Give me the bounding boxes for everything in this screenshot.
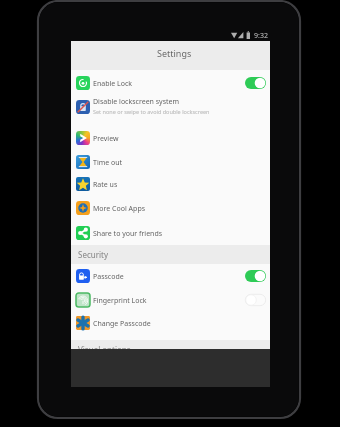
staticText: 9:32 [254, 31, 268, 41]
staticText: Time out [93, 158, 123, 168]
staticText: Fingerprint Lock [93, 296, 147, 306]
button[interactable]: Switch on [245, 270, 266, 282]
staticText: Rate us [93, 180, 118, 190]
button[interactable]: Fingerprint Lock [71, 288, 270, 311]
staticText: Disable lockscreen system [93, 97, 180, 107]
button[interactable]: Disable lockscreen system [71, 95, 270, 127]
staticText: Security [78, 249, 109, 260]
staticText: Preview [93, 134, 119, 144]
staticText: Passcode [93, 272, 124, 282]
button[interactable]: Share to your friends [71, 220, 270, 245]
button[interactable]: Switch off [245, 294, 266, 306]
button[interactable]: Preview [71, 126, 270, 150]
staticText: Enable Lock [93, 79, 133, 89]
button[interactable]: Enable Lock [71, 70, 270, 95]
button[interactable]: Switch on [245, 77, 266, 89]
staticText: Set none or swipe to avoid double locksc… [93, 108, 210, 115]
staticText: Change Passcode [93, 319, 151, 329]
staticText: Visual options [78, 344, 131, 355]
staticText: Settings [157, 47, 192, 59]
staticText: More Cool Apps [93, 204, 146, 214]
button[interactable]: Passcode [71, 264, 270, 288]
staticText: Share to your friends [93, 229, 163, 239]
button[interactable]: Change Passcode [71, 311, 270, 335]
button[interactable]: Rate us [71, 172, 270, 195]
button[interactable]: Time out [71, 150, 270, 173]
button[interactable]: More Cool Apps [71, 195, 270, 220]
